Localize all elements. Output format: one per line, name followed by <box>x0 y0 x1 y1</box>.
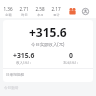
staticText: 今日数据 <box>4 86 19 91</box>
staticText: 累计 <box>53 13 60 17</box>
staticText: +315.6 <box>13 51 35 60</box>
staticText: 支出(元) › <box>63 60 78 65</box>
button[interactable]: Account <box>79 5 92 18</box>
staticText: 本月 <box>37 13 44 17</box>
button[interactable]: 2.17 <box>50 6 62 17</box>
staticText: 2.71 <box>19 6 29 12</box>
button[interactable]: 2.58 <box>34 6 46 17</box>
button[interactable]: +315.6 <box>3 24 93 47</box>
button[interactable]: 日播报提醒 <box>3 69 93 82</box>
staticText: 收入(元) › <box>16 60 31 65</box>
staticText: 今日实际收入(元) <box>31 41 65 47</box>
staticText: 昨日 <box>21 13 28 17</box>
staticText: 1.36 <box>3 6 13 12</box>
button[interactable]: +315.6 <box>3 51 48 65</box>
staticText: 0 <box>69 51 73 60</box>
button[interactable]: 2.71 <box>18 6 30 17</box>
button[interactable]: 0 <box>48 51 93 65</box>
staticText: 日播报提醒 <box>6 73 24 78</box>
button[interactable]: 1.36 <box>2 6 14 17</box>
button[interactable]: Rewards <box>66 5 79 18</box>
staticText: +315.6 <box>29 24 67 40</box>
staticText: 2.17 <box>51 6 61 12</box>
staticText: 2.58 <box>35 6 45 12</box>
staticText: 余额 <box>5 13 12 17</box>
